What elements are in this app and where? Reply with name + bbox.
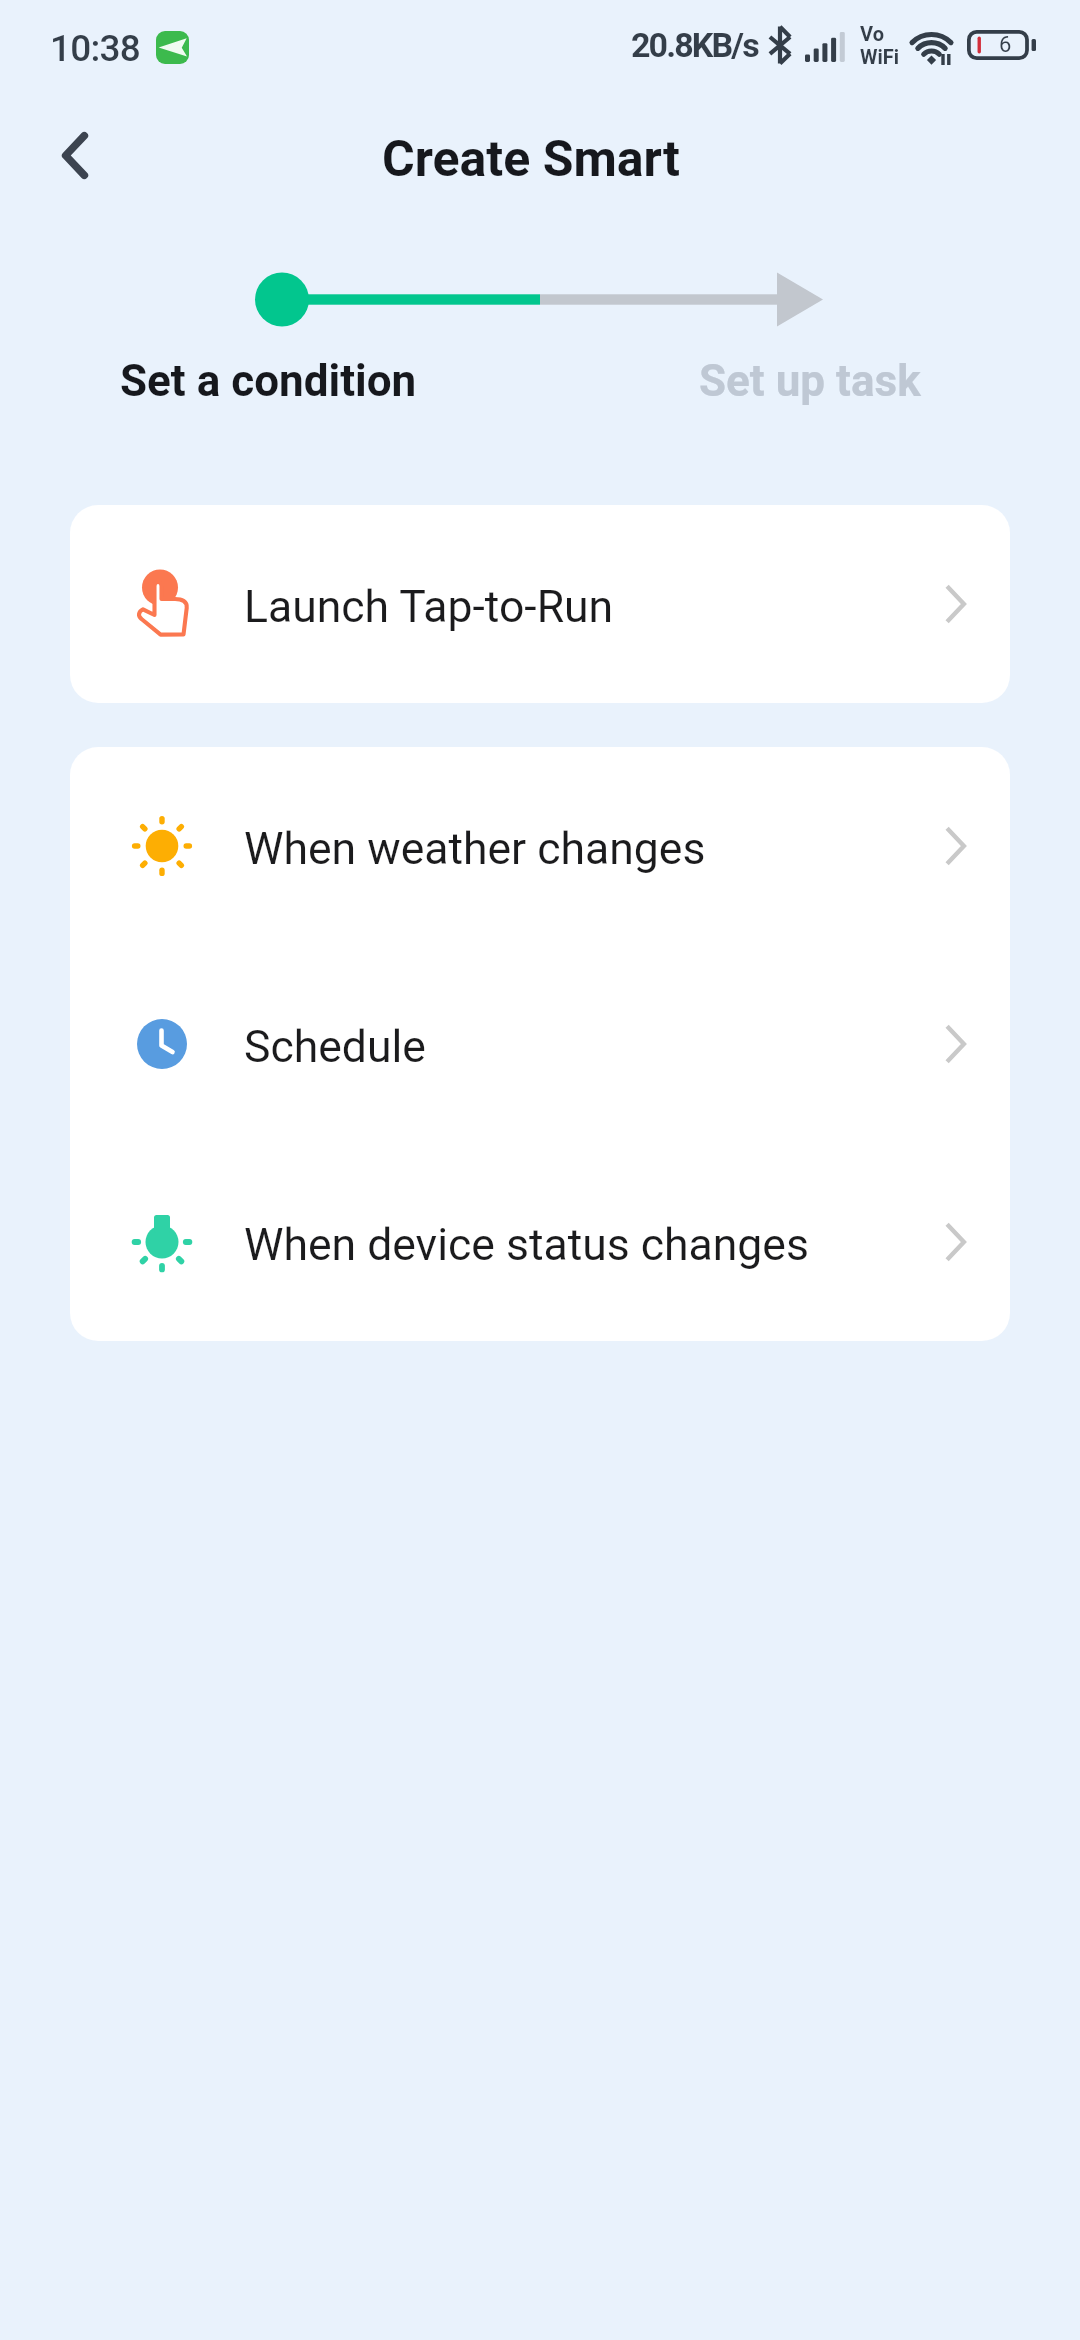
button[interactable]: Schedule	[70, 945, 1010, 1143]
staticText: Schedule	[244, 1021, 426, 1073]
staticText: Vo	[860, 22, 884, 45]
staticText: 6	[999, 32, 1012, 58]
button[interactable]: When device status changes	[70, 1143, 1010, 1341]
staticText: WiFi	[860, 45, 900, 68]
staticText: Set up task	[699, 355, 921, 407]
staticText: Set a condition	[120, 355, 417, 407]
staticText: 20.8KB/s	[631, 25, 758, 65]
staticText: 10:38	[50, 27, 140, 70]
staticText: Launch Tap-to-Run	[244, 581, 614, 633]
staticText: Create Smart	[382, 130, 680, 189]
button[interactable]: When weather changes	[70, 747, 1010, 945]
button[interactable]: Launch Tap-to-Run	[70, 505, 1010, 703]
staticText: When device status changes	[244, 1219, 809, 1271]
button[interactable]: Back	[28, 108, 122, 202]
staticText: When weather changes	[244, 823, 706, 875]
